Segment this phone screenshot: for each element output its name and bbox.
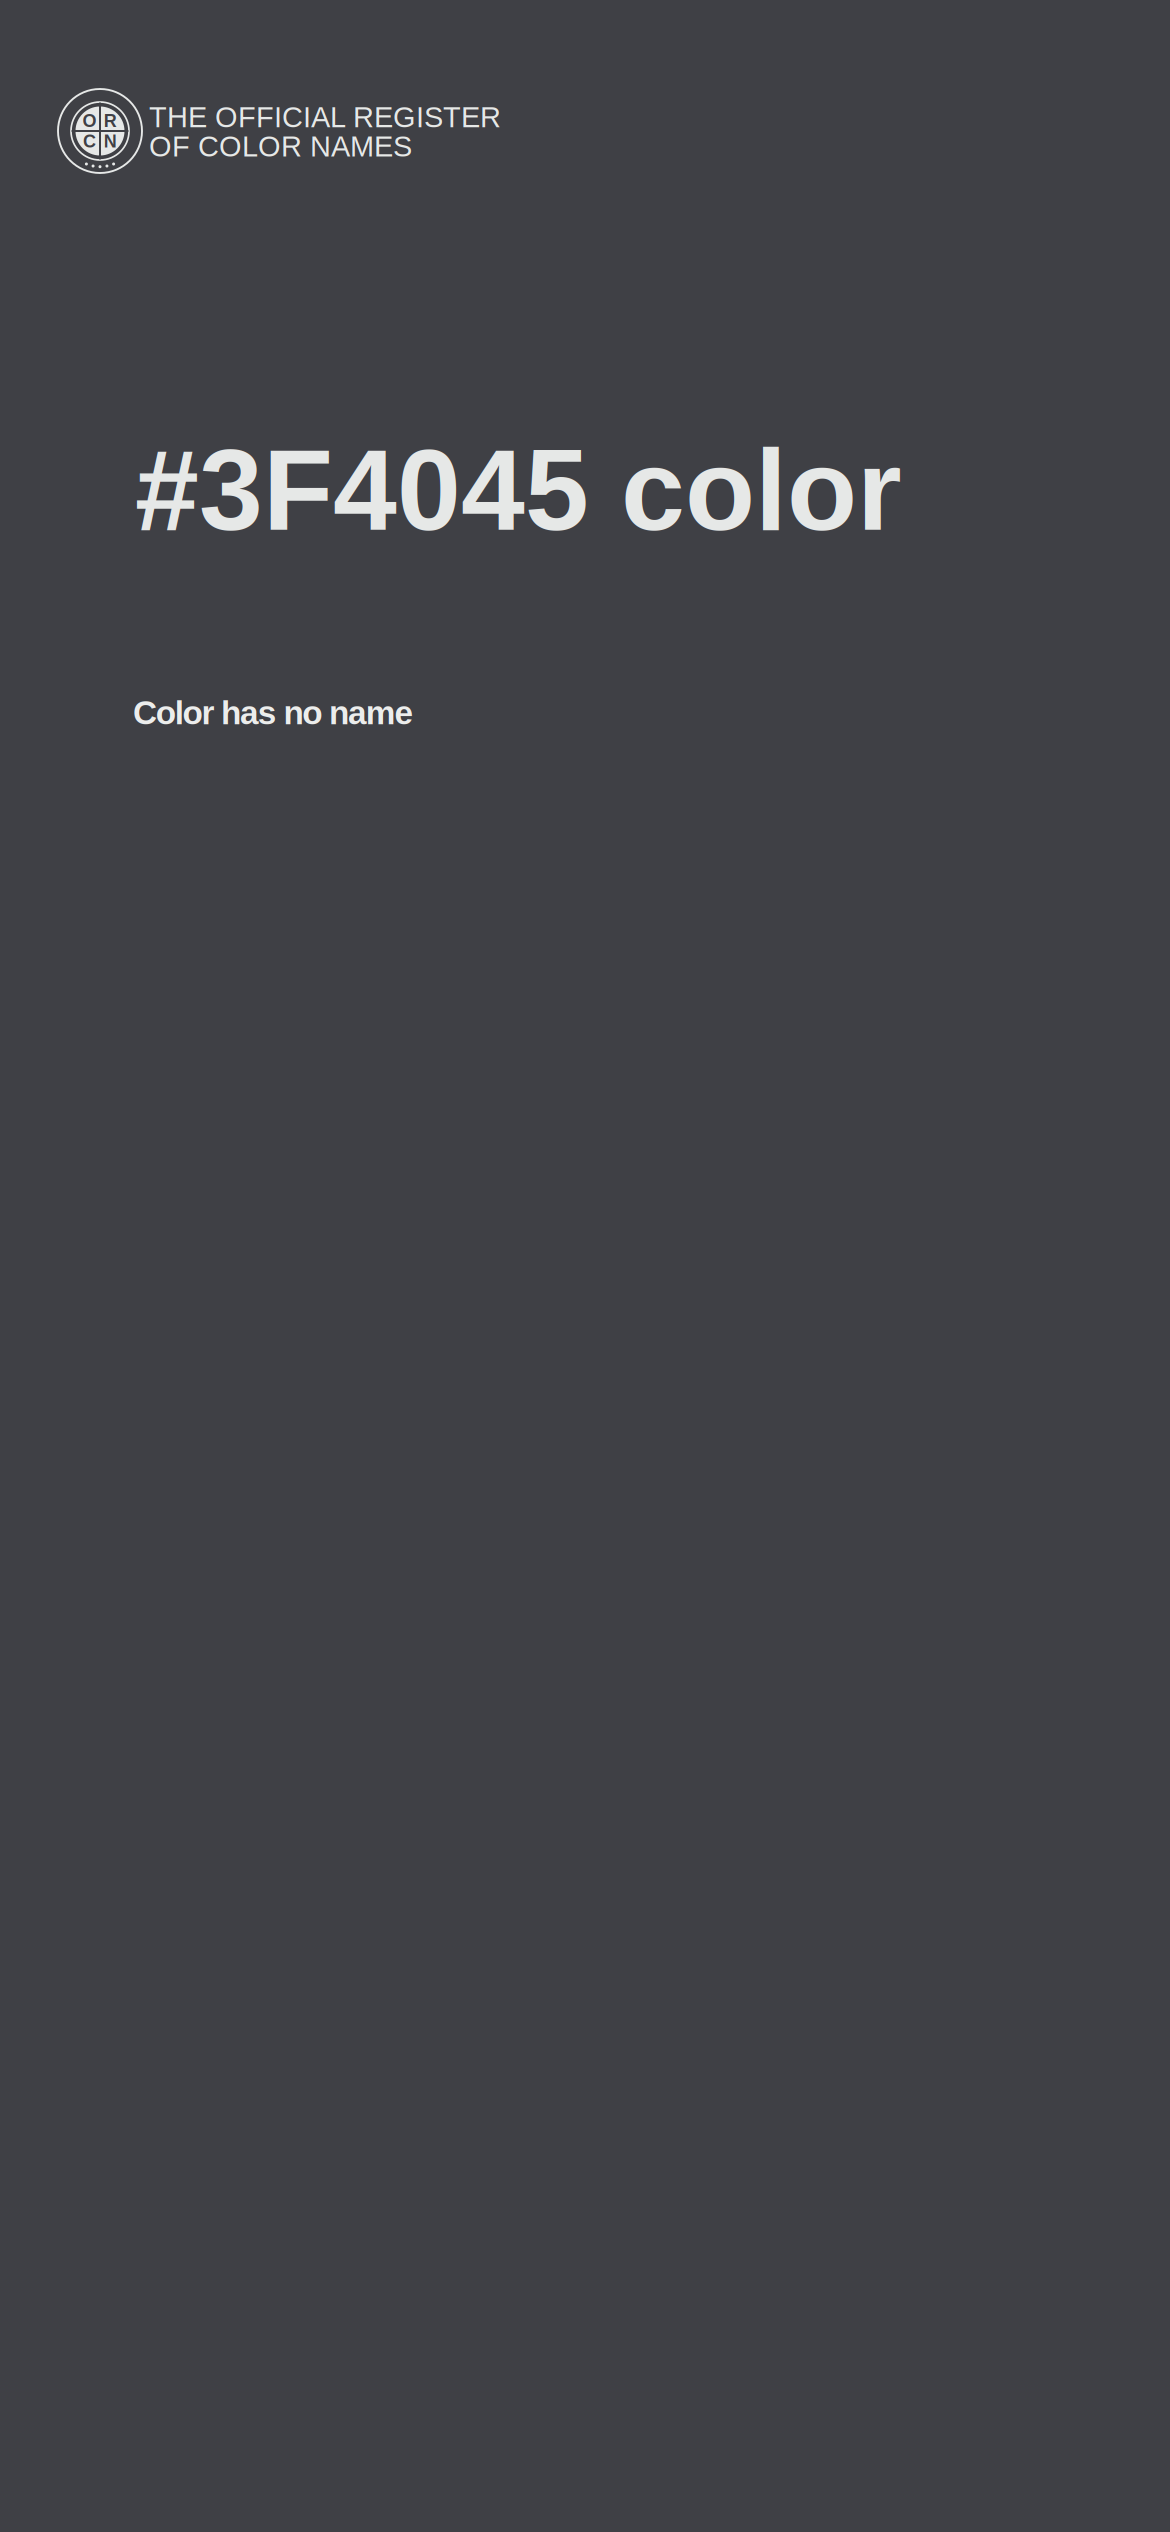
staticText: OF COLOR NAMES bbox=[149, 130, 412, 163]
button[interactable]: O bbox=[0, 0, 1170, 179]
staticText: THE OFFICIAL REGISTER bbox=[149, 101, 501, 133]
staticText: Color has no name bbox=[133, 694, 414, 731]
staticText: C bbox=[83, 131, 96, 151]
staticText: #3F4045 color bbox=[135, 426, 902, 554]
staticText: O bbox=[83, 111, 97, 131]
staticText: N bbox=[104, 131, 117, 151]
staticText: R bbox=[104, 111, 117, 131]
